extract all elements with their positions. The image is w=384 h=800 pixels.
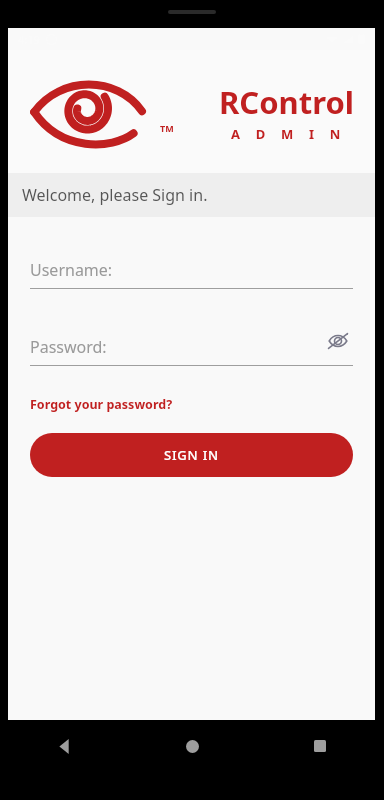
- button[interactable]: Back: [0, 720, 128, 772]
- button[interactable]: SIGN IN: [30, 433, 353, 477]
- staticText: RControl: [219, 81, 355, 123]
- staticText: Welcome, please Sign in.: [22, 184, 208, 206]
- staticText: Username:: [30, 259, 113, 281]
- button[interactable]: Password:: [30, 336, 353, 366]
- staticText: A D M I N: [231, 125, 344, 143]
- staticText: TM: [160, 122, 174, 134]
- button[interactable]: Show password: [323, 326, 353, 356]
- button[interactable]: Forgot your password?: [30, 394, 173, 415]
- button[interactable]: Home: [128, 720, 256, 772]
- button[interactable]: Username:: [30, 259, 353, 289]
- staticText: SIGN IN: [164, 446, 219, 464]
- staticText: Password:: [30, 336, 107, 358]
- staticText: Forgot your password?: [30, 396, 173, 413]
- button[interactable]: Recent apps: [256, 720, 384, 772]
